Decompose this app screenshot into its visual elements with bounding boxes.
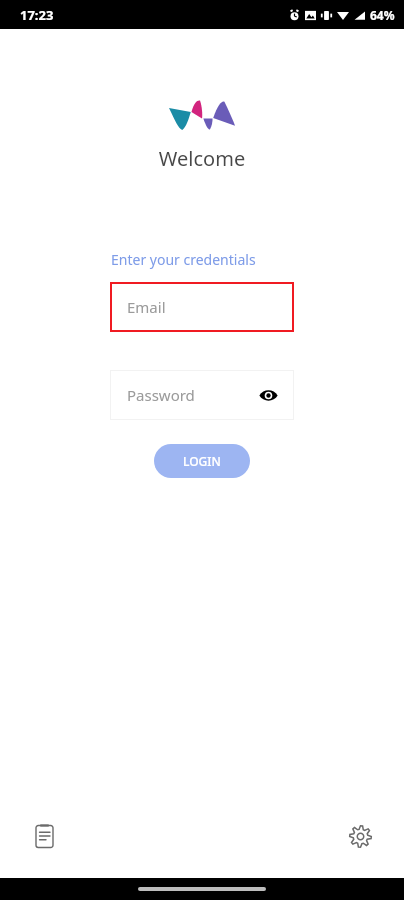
staticText: Welcome	[0, 145, 404, 172]
staticText: Enter your credentials	[111, 250, 256, 269]
staticText: Email	[127, 297, 166, 317]
button[interactable]: LOGIN	[154, 444, 250, 478]
button[interactable]: Password	[110, 370, 294, 420]
staticText: 17:23	[20, 6, 54, 24]
button[interactable]: Email	[110, 282, 294, 332]
button[interactable]: Documents	[22, 814, 66, 858]
button[interactable]: Settings	[338, 814, 382, 858]
button[interactable]: Show password	[254, 381, 282, 409]
staticText: 64%	[370, 7, 395, 23]
staticText: Password	[127, 385, 195, 405]
staticText: LOGIN	[183, 453, 221, 469]
